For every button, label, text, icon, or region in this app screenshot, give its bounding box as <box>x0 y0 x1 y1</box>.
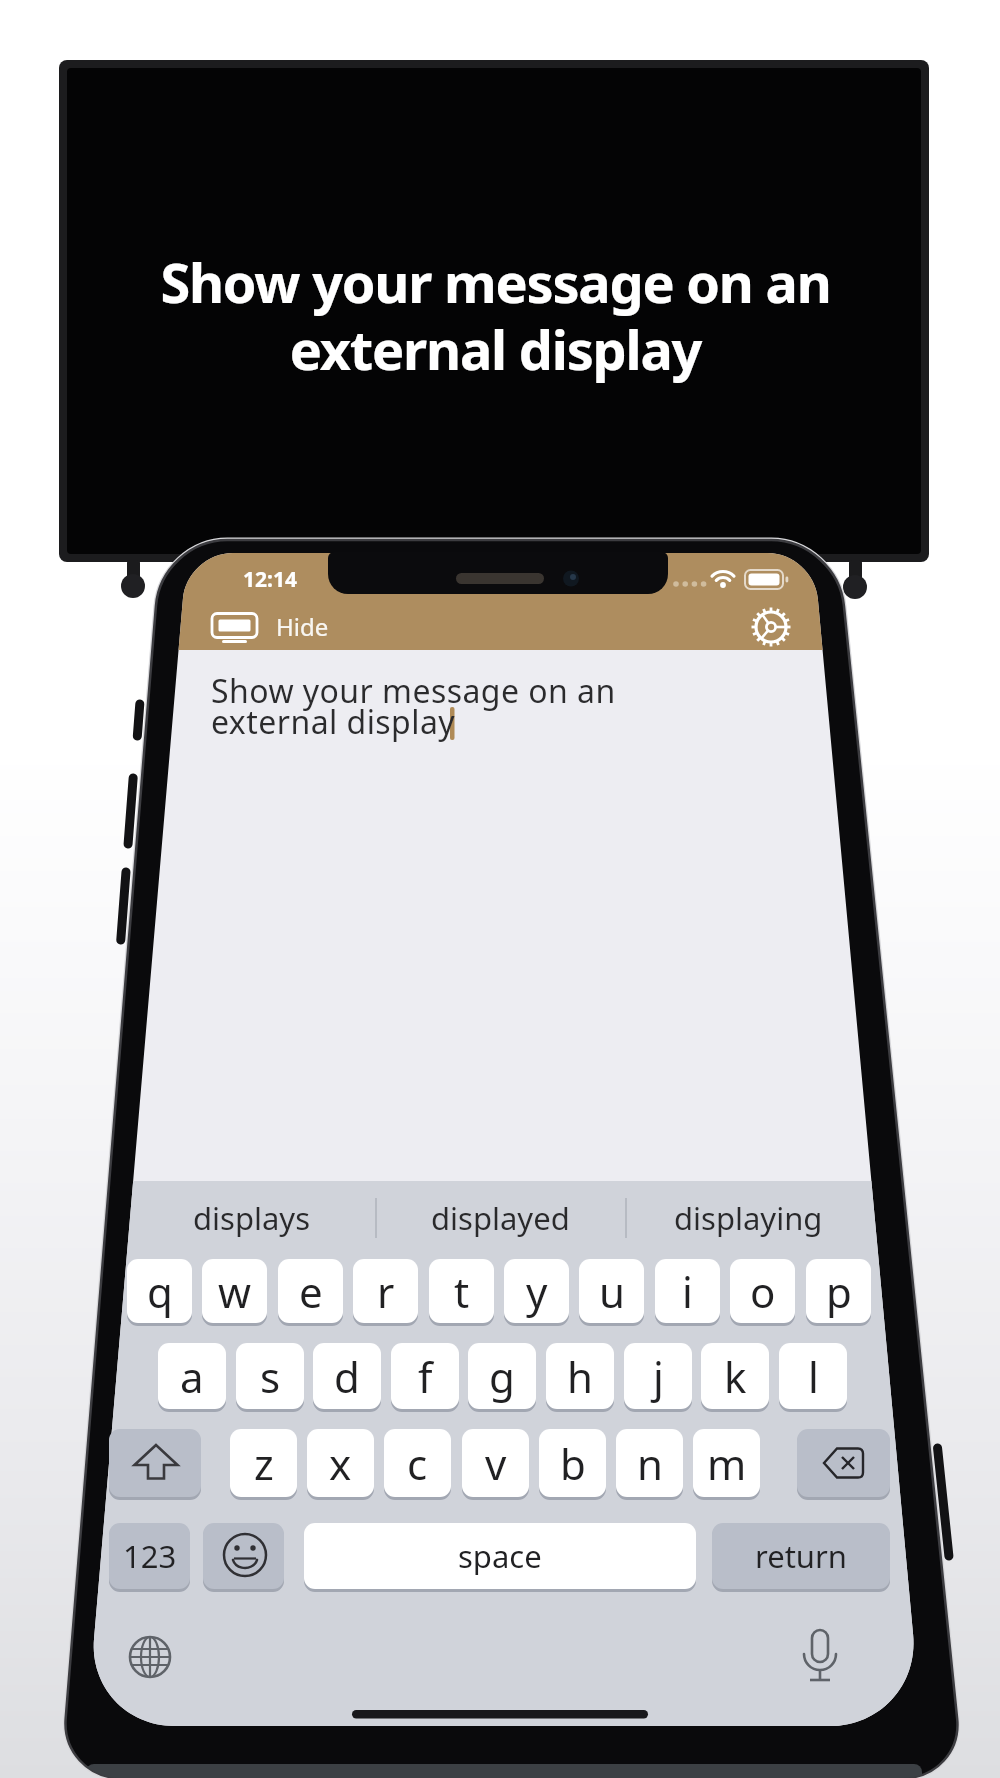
staticText: a <box>180 1348 204 1405</box>
button[interactable]: h <box>546 1343 614 1409</box>
button[interactable]: return <box>712 1523 890 1589</box>
staticText: w <box>218 1263 252 1320</box>
button[interactable]: u <box>579 1259 644 1323</box>
staticText: d <box>334 1348 360 1405</box>
button[interactable]: p <box>806 1259 871 1323</box>
staticText: l <box>808 1348 819 1405</box>
staticText: q <box>147 1263 173 1320</box>
staticText: p <box>826 1263 852 1320</box>
staticText: 12:14 <box>243 565 297 591</box>
staticText: f <box>418 1348 433 1405</box>
staticText: displays <box>193 1197 311 1239</box>
button[interactable]: 123 <box>109 1523 190 1589</box>
button[interactable]: b <box>539 1429 606 1497</box>
button[interactable]: e <box>278 1259 343 1323</box>
button[interactable]: l <box>779 1343 847 1409</box>
button[interactable]: z <box>230 1429 297 1497</box>
button[interactable]: s <box>236 1343 304 1409</box>
button[interactable]: k <box>701 1343 769 1409</box>
button[interactable]: displays <box>164 1192 340 1244</box>
staticText: r <box>377 1263 395 1320</box>
staticText: h <box>567 1348 593 1405</box>
staticText: y <box>526 1263 548 1320</box>
button[interactable]: v <box>462 1429 529 1497</box>
staticText: g <box>489 1348 515 1405</box>
button[interactable] <box>203 1523 284 1589</box>
staticText: t <box>454 1263 470 1320</box>
button[interactable]: Hide <box>205 602 340 650</box>
staticText: j <box>653 1348 664 1405</box>
staticText: i <box>682 1263 693 1320</box>
button[interactable]: c <box>384 1429 451 1497</box>
staticText: o <box>750 1263 776 1320</box>
staticText: Show your message on an external display <box>211 669 616 744</box>
button[interactable]: m <box>693 1429 760 1497</box>
button[interactable]: t <box>429 1259 494 1323</box>
button[interactable]: g <box>468 1343 536 1409</box>
staticText: x <box>329 1435 352 1492</box>
staticText: space <box>458 1535 542 1577</box>
button[interactable]: displaying <box>660 1192 836 1244</box>
staticText: e <box>299 1263 323 1320</box>
button[interactable] <box>109 1429 201 1497</box>
button[interactable]: d <box>313 1343 381 1409</box>
staticText: m <box>707 1435 747 1492</box>
button[interactable]: q <box>127 1259 192 1323</box>
button[interactable]: space <box>304 1523 696 1589</box>
button[interactable]: w <box>202 1259 267 1323</box>
staticText: v <box>485 1435 507 1492</box>
button[interactable]: o <box>730 1259 795 1323</box>
button[interactable] <box>745 601 797 653</box>
button[interactable]: x <box>307 1429 374 1497</box>
staticText: u <box>599 1263 625 1320</box>
staticText: n <box>637 1435 663 1492</box>
staticText: 123 <box>123 1535 177 1577</box>
button[interactable]: i <box>655 1259 720 1323</box>
staticText: b <box>560 1435 586 1492</box>
staticText: k <box>724 1348 747 1405</box>
staticText: displaying <box>674 1197 823 1239</box>
staticText: Show your message on an external display <box>160 245 831 385</box>
staticText: s <box>260 1348 281 1405</box>
button[interactable]: a <box>158 1343 226 1409</box>
button[interactable]: displayed <box>412 1192 588 1244</box>
staticText: return <box>755 1535 847 1577</box>
button[interactable]: y <box>504 1259 569 1323</box>
staticText: z <box>254 1435 274 1492</box>
button[interactable]: f <box>391 1343 459 1409</box>
button[interactable]: r <box>353 1259 418 1323</box>
button[interactable]: n <box>616 1429 683 1497</box>
staticText: c <box>407 1435 428 1492</box>
button[interactable] <box>797 1429 890 1497</box>
staticText: displayed <box>431 1197 570 1239</box>
button[interactable]: j <box>624 1343 692 1409</box>
staticText: Hide <box>276 610 329 643</box>
